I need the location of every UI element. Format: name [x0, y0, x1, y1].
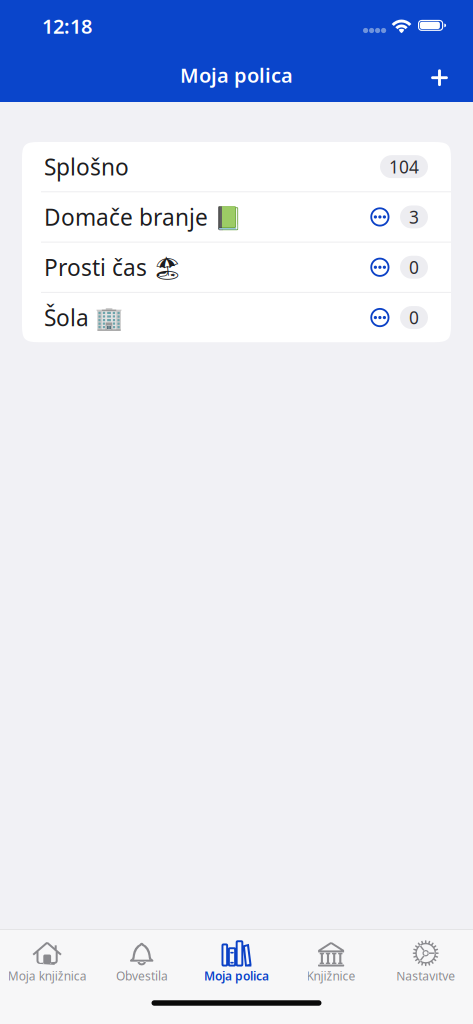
button[interactable]: Obvestila — [95, 929, 189, 982]
button[interactable]: Domače branje 📗 — [22, 192, 451, 242]
staticText: 0 — [409, 256, 419, 279]
staticText: 0 — [409, 306, 419, 329]
staticText: Domače branje 📗 — [44, 202, 242, 232]
staticText: Moja polica — [180, 62, 293, 88]
button[interactable]: Moja knjižnica — [0, 929, 95, 982]
staticText: Moja knjižnica — [8, 968, 87, 984]
button[interactable]: Splošno — [22, 142, 451, 191]
button[interactable]: Prosti čas 🏖 — [22, 243, 451, 292]
staticText: 104 — [389, 155, 419, 178]
staticText: Knjižnice — [307, 968, 356, 984]
button[interactable]: Knjižnice — [284, 929, 378, 982]
button[interactable]: Add shelf — [417, 53, 461, 97]
staticText: Moja polica — [204, 968, 269, 984]
button[interactable]: Nastavitve — [378, 929, 473, 982]
button[interactable]: Šola 🏢 — [22, 293, 451, 342]
staticText: 12:18 — [42, 13, 92, 39]
staticText: Splošno — [44, 152, 129, 182]
button[interactable]: Moja polica — [189, 929, 284, 982]
staticText: 3 — [409, 205, 419, 228]
staticText: Nastavitve — [396, 968, 455, 984]
staticText: Prosti čas 🏖 — [44, 252, 182, 282]
staticText: Šola 🏢 — [44, 302, 123, 333]
staticText: Obvestila — [116, 968, 168, 984]
